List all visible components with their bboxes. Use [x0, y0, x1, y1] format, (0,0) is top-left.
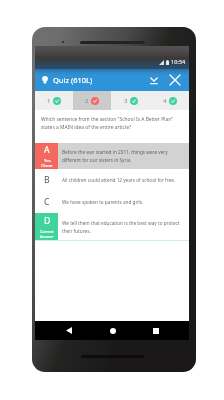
button[interactable]: 4 — [150, 91, 189, 110]
button[interactable]: B — [35, 169, 189, 191]
staticText: 3 — [124, 97, 128, 105]
staticText: C — [44, 196, 50, 208]
button[interactable]: Collapse — [144, 69, 164, 91]
staticText: We tell them that education is the best … — [62, 220, 183, 234]
button[interactable]: 2 — [73, 91, 111, 110]
staticText: 10:54 — [171, 58, 186, 66]
staticText: Chose — [41, 163, 53, 168]
button[interactable]: 1 — [35, 91, 73, 110]
staticText: Which sentence from the section "School … — [41, 116, 181, 130]
staticText: All children could attend 12 years of sc… — [62, 177, 176, 183]
button[interactable]: D — [35, 213, 189, 240]
staticText: Answer — [40, 234, 54, 239]
staticText: A — [44, 144, 50, 156]
staticText: Quiz (610L) — [53, 75, 93, 85]
staticText: B — [44, 174, 50, 186]
staticText: 4 — [163, 97, 167, 105]
button[interactable]: Back — [59, 321, 78, 340]
staticText: Correct — [40, 229, 54, 234]
staticText: 2 — [85, 97, 89, 105]
staticText: We have spoken to parents and girls. — [62, 199, 144, 205]
button[interactable]: Recent apps — [146, 321, 165, 340]
staticText: 1 — [47, 97, 51, 105]
staticText: You — [44, 158, 51, 163]
button[interactable]: C — [35, 191, 189, 213]
button[interactable]: A — [35, 143, 189, 169]
staticText: D — [44, 215, 51, 227]
staticText: Before the war started in 2011, things w… — [62, 149, 183, 163]
button[interactable]: 3 — [111, 91, 150, 110]
button[interactable]: Close — [164, 69, 186, 91]
button[interactable]: Home — [103, 321, 122, 340]
